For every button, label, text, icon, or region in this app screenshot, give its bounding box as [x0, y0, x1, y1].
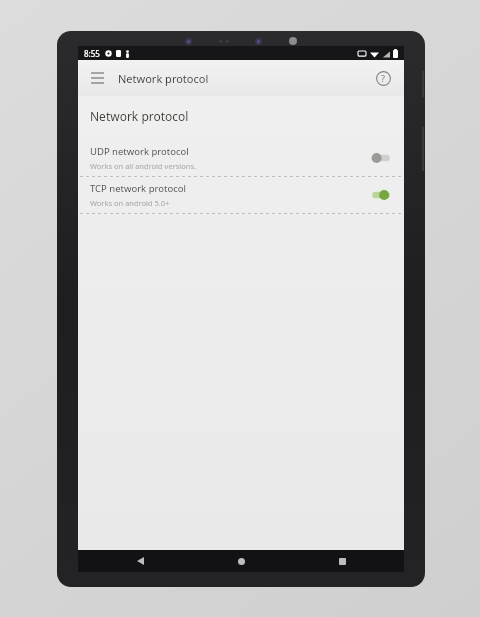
staticText: Works on all android versions.	[90, 161, 197, 171]
staticText: ?	[381, 72, 385, 84]
button[interactable]: Home	[231, 551, 251, 571]
staticText: TCP network protocol	[90, 182, 186, 195]
staticText: Works on android 5.0+	[90, 198, 170, 208]
button[interactable]: TCP network protocol	[78, 177, 404, 213]
button[interactable]: Off	[370, 151, 392, 165]
button[interactable]: Back	[130, 551, 150, 571]
staticText: Network protocol	[118, 71, 209, 86]
staticText: 8:55	[84, 48, 100, 59]
button[interactable]: Open navigation menu	[84, 65, 110, 91]
button[interactable]: Recent apps	[332, 551, 352, 571]
staticText: UDP network protocol	[90, 145, 189, 158]
staticText: Network protocol	[90, 108, 189, 124]
button[interactable]: UDP network protocol	[78, 140, 404, 176]
button[interactable]: On	[370, 188, 392, 202]
button[interactable]: Help	[370, 65, 396, 91]
